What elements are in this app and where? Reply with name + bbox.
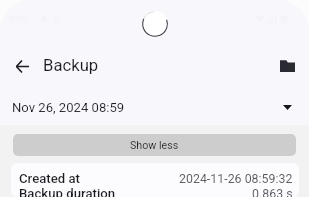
staticText: Backup duration <box>19 186 116 197</box>
button[interactable]: Nov 26, 2024 08:59 <box>0 88 309 125</box>
staticText: Created at <box>19 171 80 186</box>
staticText: Show less <box>130 139 179 152</box>
button[interactable]: Open folder <box>264 44 308 88</box>
staticText: 2024-11-26 08:59:32 <box>179 171 293 186</box>
staticText: Backup <box>43 56 99 76</box>
staticText: Nov 26, 2024 08:59 <box>12 100 125 115</box>
button[interactable]: Show less <box>13 134 296 156</box>
staticText: 0.863 s <box>252 186 293 197</box>
button[interactable]: Navigate up <box>0 44 44 88</box>
button[interactable]: Created at <box>11 163 299 197</box>
